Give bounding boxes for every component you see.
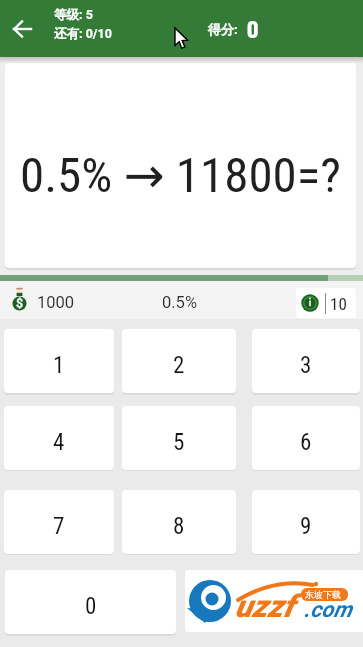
staticText: 还有: 0/10	[54, 26, 112, 42]
staticText: 4	[53, 429, 65, 456]
button[interactable]: 0	[5, 570, 176, 634]
button[interactable]: 8	[122, 490, 236, 554]
button[interactable]: 4	[4, 406, 114, 470]
button[interactable]: 9	[252, 490, 360, 554]
staticText: 7	[53, 513, 65, 540]
staticText: 0.5% → 11800=?	[20, 147, 341, 204]
staticText: 2	[173, 352, 185, 379]
button[interactable]: uzzf	[185, 570, 363, 632]
button[interactable]: 7	[4, 490, 114, 554]
staticText: 1000	[37, 293, 75, 312]
staticText: 9	[300, 513, 312, 540]
staticText: 东坡下载	[305, 589, 341, 600]
staticText: 0	[247, 13, 259, 43]
staticText: 0	[85, 593, 97, 620]
button[interactable]: 3	[252, 329, 360, 393]
staticText: $	[16, 296, 24, 311]
button[interactable]: 10	[296, 288, 356, 318]
staticText: 3	[300, 352, 312, 379]
staticText: 1	[53, 352, 65, 379]
button[interactable]: 1	[4, 329, 114, 393]
staticText: 10	[330, 294, 347, 314]
staticText: 等级: 5	[54, 7, 93, 23]
staticText: uzzf	[235, 588, 294, 624]
button[interactable]: 6	[252, 406, 360, 470]
staticText: 0.5%	[162, 293, 197, 312]
button[interactable]	[6, 13, 38, 45]
staticText: 8	[173, 513, 185, 540]
button[interactable]: 2	[122, 329, 236, 393]
staticText: .com	[304, 597, 352, 623]
button[interactable]: 5	[122, 406, 236, 470]
staticText: 5	[173, 429, 185, 456]
staticText: 得分:	[208, 21, 238, 37]
staticText: 6	[300, 429, 312, 456]
